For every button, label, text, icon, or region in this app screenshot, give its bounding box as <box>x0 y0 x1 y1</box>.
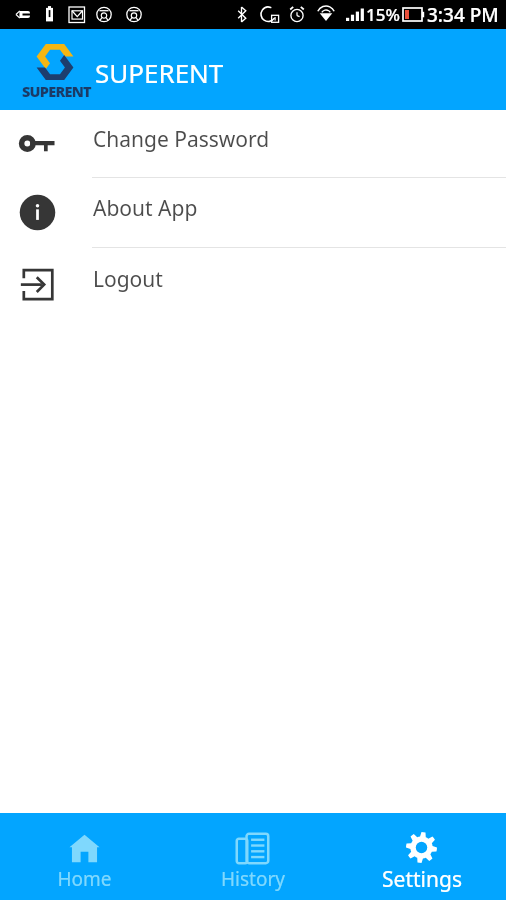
staticText: 3:34 PM <box>427 2 499 28</box>
staticText: Logout <box>93 265 163 294</box>
staticText: Home <box>57 866 112 892</box>
button[interactable]: History <box>168 813 337 900</box>
staticText: History <box>221 866 285 892</box>
staticText: Change Password <box>93 125 270 154</box>
button[interactable]: Settings <box>337 813 506 900</box>
staticText: Settings <box>382 865 462 894</box>
button[interactable]: About App <box>0 178 506 247</box>
staticText: SUPERENT <box>95 55 224 90</box>
staticText: About App <box>93 194 198 223</box>
staticText: 15% <box>366 3 400 26</box>
button[interactable]: Change Password <box>0 110 506 177</box>
staticText: SUPERENT <box>22 81 91 101</box>
button[interactable]: Home <box>0 813 168 900</box>
button[interactable]: Logout <box>0 248 506 318</box>
